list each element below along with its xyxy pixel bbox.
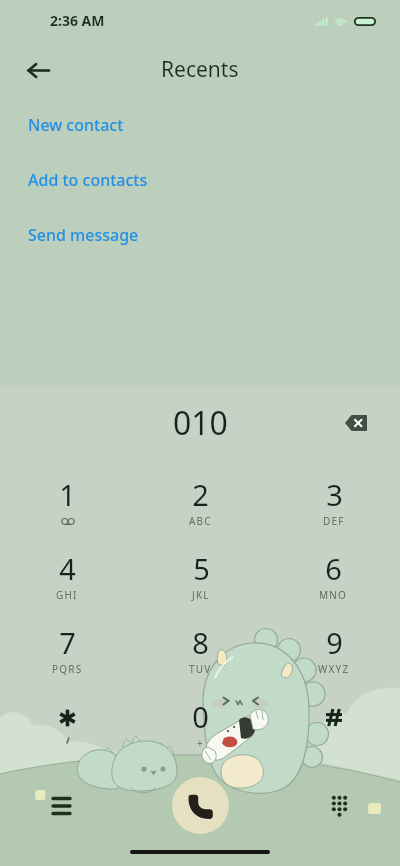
button[interactable] <box>267 697 400 771</box>
staticText: ABC <box>189 514 212 528</box>
staticText: PQRS <box>52 662 83 676</box>
staticText: Send message <box>28 224 139 246</box>
staticText: GHI <box>56 588 78 602</box>
button[interactable]: Dialpad <box>319 785 359 825</box>
staticText: 8 <box>192 623 209 662</box>
staticText: 3 <box>326 475 343 514</box>
button[interactable]: 0 <box>134 697 267 771</box>
button[interactable]: 7 <box>0 623 134 697</box>
button[interactable]: Back <box>18 50 58 90</box>
staticText: 2 <box>192 475 209 514</box>
button[interactable]: 1 <box>0 475 134 549</box>
staticText: Add to contacts <box>28 169 148 191</box>
staticText: TUV <box>189 662 212 676</box>
staticText: 6 <box>325 549 342 588</box>
staticText: + <box>197 736 204 750</box>
staticText: DEF <box>323 514 345 528</box>
button[interactable]: Menu <box>41 784 81 824</box>
staticText: 4 <box>59 549 76 588</box>
button[interactable]: 2 <box>134 475 267 549</box>
staticText: Recents <box>161 55 239 84</box>
button[interactable]: 3 <box>267 475 400 549</box>
staticText: 5 <box>193 549 210 588</box>
button[interactable]: Send message <box>0 207 400 262</box>
staticText: 0 <box>192 697 209 736</box>
button[interactable]: Call <box>172 777 229 834</box>
button[interactable]: 6 <box>267 549 400 623</box>
staticText: 9 <box>326 623 343 662</box>
staticText: 2:36 AM <box>50 11 105 30</box>
staticText: JKL <box>192 588 210 602</box>
button[interactable]: 5 <box>134 549 267 623</box>
button[interactable] <box>0 697 134 771</box>
button[interactable]: Add to contacts <box>0 152 400 207</box>
button[interactable]: 9 <box>267 623 400 697</box>
staticText: New contact <box>28 114 124 136</box>
button[interactable]: 4 <box>0 549 134 623</box>
staticText: 7 <box>59 623 76 662</box>
button[interactable]: Backspace <box>336 403 376 443</box>
staticText: 010 <box>173 401 228 445</box>
button[interactable]: 8 <box>134 623 267 697</box>
staticText: 1 <box>59 475 76 514</box>
staticText: WXYZ <box>318 662 350 676</box>
button[interactable]: New contact <box>0 97 400 152</box>
staticText: MNO <box>319 588 348 602</box>
